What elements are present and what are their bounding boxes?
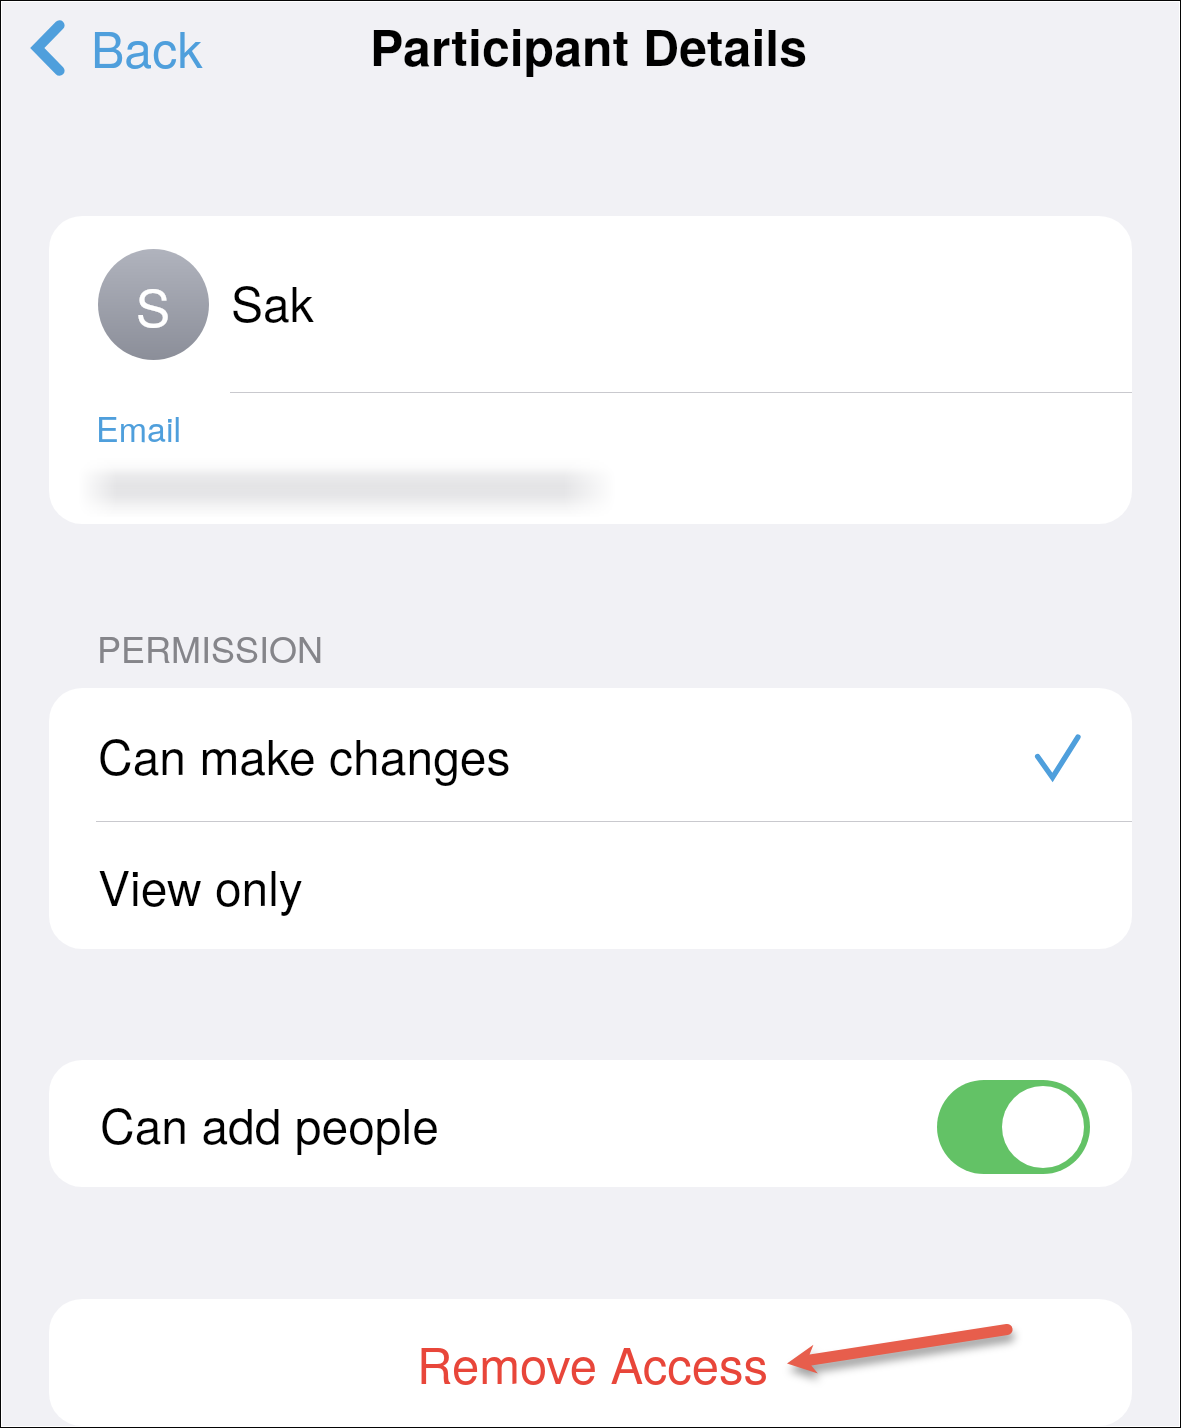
staticText: Remove Access xyxy=(417,1328,769,1398)
staticText: Back xyxy=(91,11,203,83)
staticText: Participant Details xyxy=(370,10,807,82)
staticText: Can make changes xyxy=(98,720,511,789)
button[interactable]: Back xyxy=(2,6,227,90)
staticText: Can add people xyxy=(100,1089,439,1158)
other: Selected xyxy=(1035,734,1081,782)
button[interactable]: View only xyxy=(49,822,1132,949)
button[interactable]: Can add people xyxy=(49,1060,1132,1187)
button[interactable]: Can make changes xyxy=(49,688,1132,821)
staticText: S xyxy=(136,268,171,341)
staticText: Sak xyxy=(231,267,314,336)
button[interactable]: Remove Access xyxy=(49,1299,1132,1426)
staticText: Email xyxy=(96,403,181,452)
staticText: View only xyxy=(98,851,303,920)
staticText: PERMISSION xyxy=(97,622,324,674)
other: Back xyxy=(32,20,65,76)
